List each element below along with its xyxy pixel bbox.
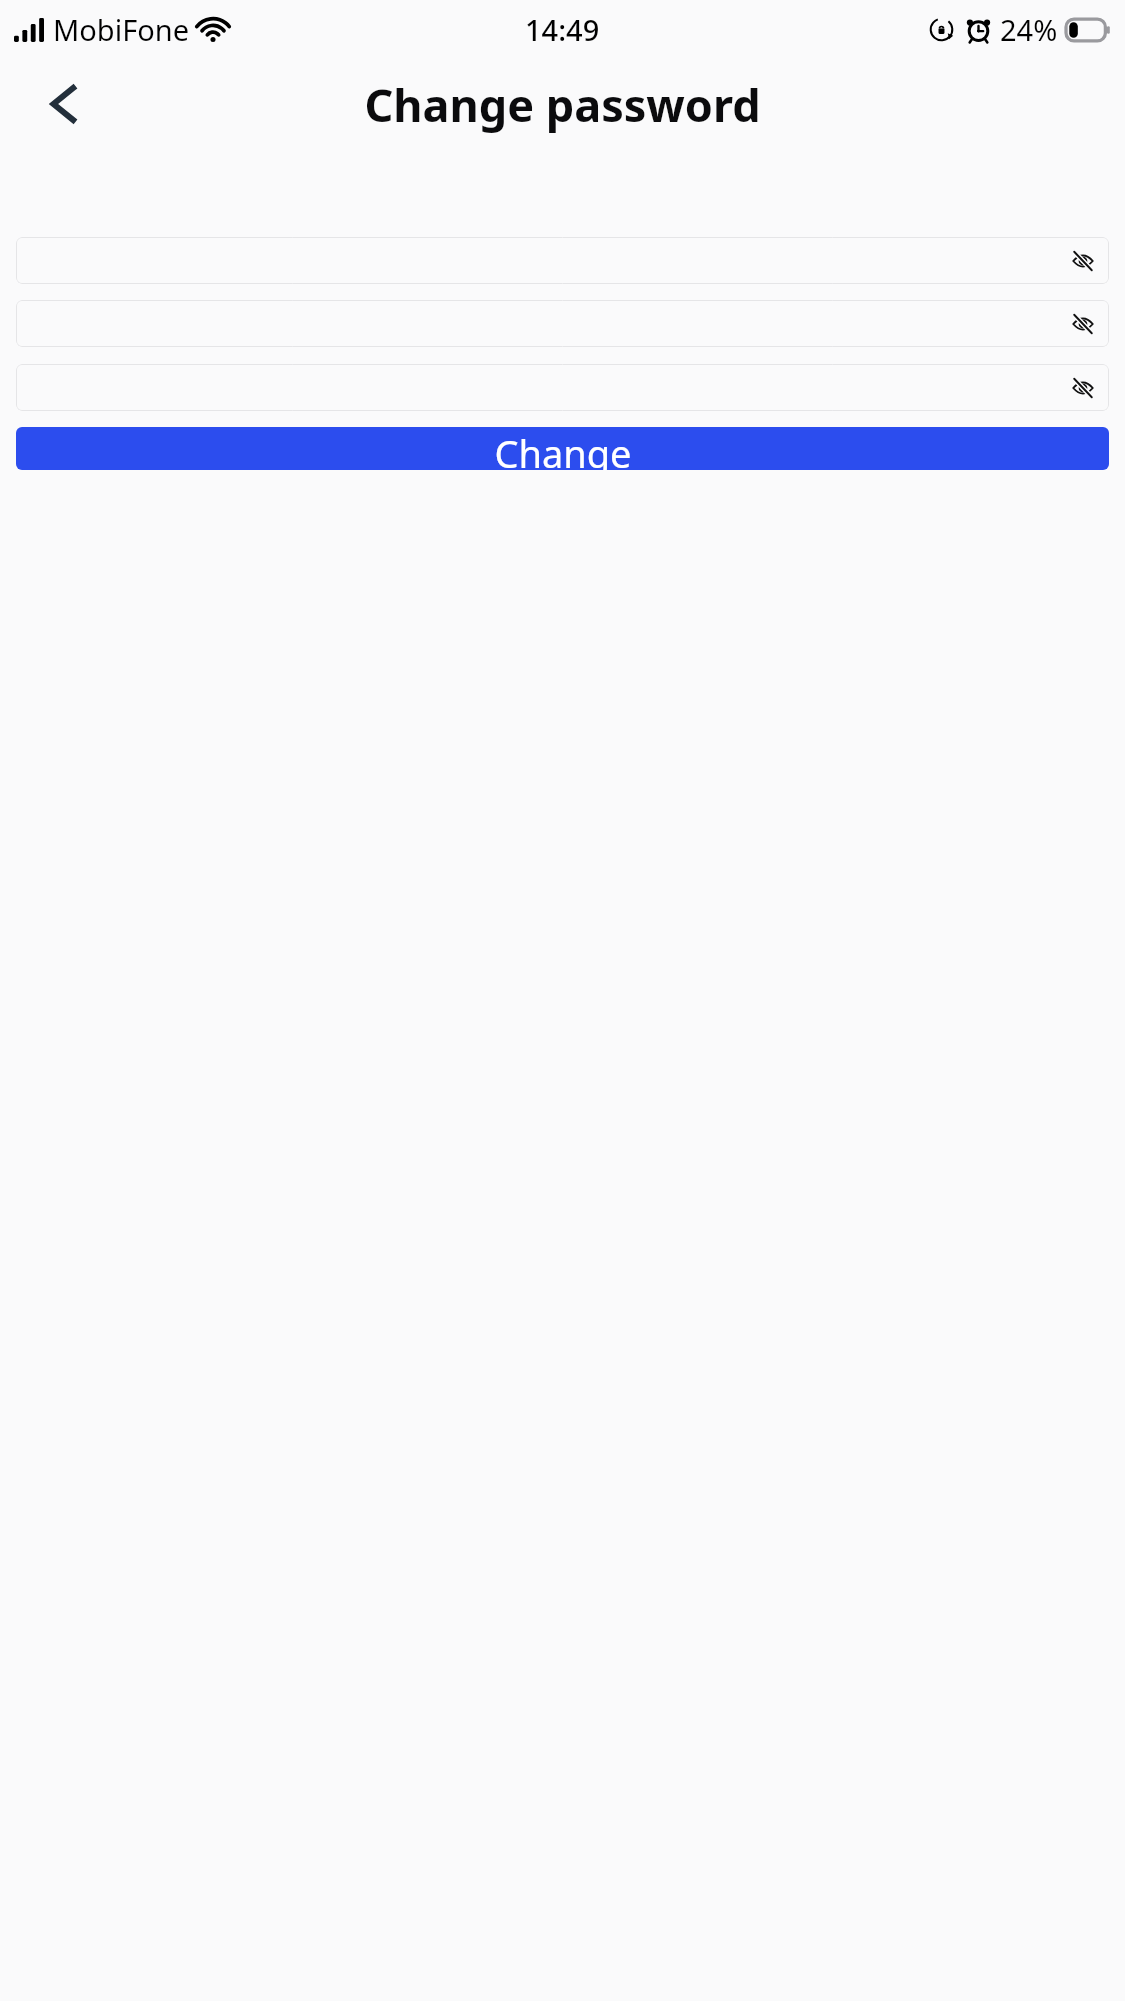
staticText: 24%	[1000, 10, 1058, 49]
button[interactable]: Show password	[1065, 306, 1101, 342]
staticText: Change	[494, 427, 632, 470]
button[interactable]: Back	[34, 75, 92, 133]
button[interactable]: Show password	[16, 237, 1109, 284]
button[interactable]: Show password	[1065, 370, 1101, 406]
button[interactable]: Show password	[16, 300, 1109, 347]
button[interactable]: Show password	[1065, 243, 1101, 279]
staticText: 14:49	[525, 10, 600, 49]
staticText: Change password	[364, 74, 761, 135]
button[interactable]: Show password	[16, 364, 1109, 411]
button[interactable]: Change	[16, 427, 1109, 470]
staticText: MobiFone	[53, 10, 190, 49]
